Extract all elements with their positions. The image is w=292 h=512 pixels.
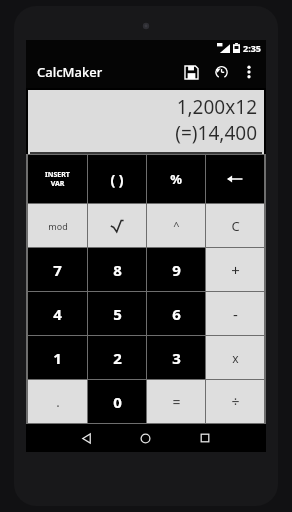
button[interactable]: %	[147, 155, 205, 203]
staticText: 9	[172, 260, 181, 280]
staticText: CalcMaker	[37, 63, 103, 81]
staticText: ÷	[231, 392, 240, 411]
button[interactable]: 2	[88, 336, 146, 379]
staticText: =	[172, 392, 181, 411]
staticText: 2	[113, 348, 122, 368]
staticText: +	[231, 260, 240, 280]
staticText: x	[232, 350, 239, 366]
button[interactable]: 3	[147, 336, 205, 379]
button[interactable]: 1	[28, 336, 87, 379]
staticText: 8	[113, 260, 122, 280]
staticText: C	[231, 217, 240, 235]
staticText: 1	[53, 348, 62, 368]
button[interactable]: Back	[57, 424, 116, 452]
button[interactable]: 8	[88, 248, 146, 291]
staticText: -	[233, 304, 238, 324]
staticText: .	[56, 393, 60, 411]
button[interactable]: Home	[116, 424, 175, 452]
button[interactable]: 4	[28, 292, 87, 335]
staticText: 2:35	[243, 42, 261, 54]
staticText: ^	[173, 218, 180, 233]
button[interactable]: 9	[147, 248, 205, 291]
staticText: %	[170, 170, 182, 188]
button[interactable]	[88, 204, 146, 247]
staticText: 7	[53, 260, 62, 280]
button[interactable]: 6	[147, 292, 205, 335]
button[interactable]	[206, 155, 264, 203]
staticText: 4	[53, 304, 62, 324]
button[interactable]: Save	[176, 57, 206, 87]
button[interactable]: 5	[88, 292, 146, 335]
staticText: mod	[48, 220, 68, 232]
button[interactable]: Recent apps	[175, 424, 234, 452]
button[interactable]: mod	[28, 204, 87, 247]
button[interactable]: 0	[88, 380, 146, 423]
button[interactable]: 7	[28, 248, 87, 291]
button[interactable]: ÷	[206, 380, 264, 423]
button[interactable]: History	[206, 57, 236, 87]
button[interactable]: INSERT VAR	[28, 155, 87, 203]
staticText: 3	[172, 348, 181, 368]
button[interactable]: =	[147, 380, 205, 423]
staticText: INSERT VAR	[45, 170, 70, 188]
staticText: 5	[113, 304, 122, 324]
staticText: (=)14,400	[175, 120, 257, 146]
staticText: ( )	[110, 170, 124, 189]
button[interactable]: +	[206, 248, 264, 291]
button[interactable]: ^	[147, 204, 205, 247]
staticText: 1,200x12	[176, 94, 257, 120]
button[interactable]: -	[206, 292, 264, 335]
button[interactable]: C	[206, 204, 264, 247]
button[interactable]: More options	[236, 59, 262, 85]
button[interactable]: ( )	[88, 155, 146, 203]
staticText: 6	[172, 304, 181, 324]
button[interactable]: x	[206, 336, 264, 379]
staticText: 0	[113, 392, 122, 412]
